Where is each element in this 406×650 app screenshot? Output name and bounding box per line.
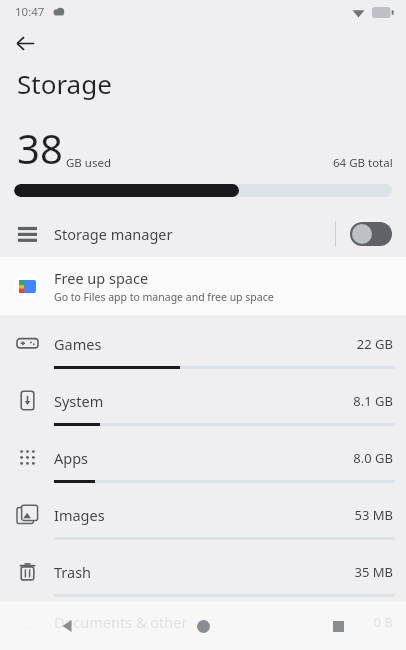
staticText: System <box>54 391 104 411</box>
staticText: Apps <box>54 448 89 468</box>
button[interactable]: Recent apps <box>271 602 406 650</box>
staticText: 38 <box>17 121 63 175</box>
staticText: 64 GB total <box>333 155 393 171</box>
staticText: 10:47 <box>15 4 45 20</box>
staticText: Free up space <box>54 268 149 288</box>
staticText: Storage manager <box>54 224 173 244</box>
button[interactable]: System <box>0 378 406 435</box>
button[interactable]: Games <box>0 321 406 378</box>
button[interactable]: Apps <box>0 435 406 492</box>
button[interactable]: Documents & other <box>0 606 406 650</box>
staticText: 22 GB <box>356 335 393 353</box>
staticText: 0 B <box>373 613 393 631</box>
staticText: Games <box>54 334 102 354</box>
button[interactable]: Trash <box>0 549 406 606</box>
staticText: 8.1 GB <box>353 392 393 410</box>
staticText: Images <box>54 505 105 525</box>
staticText: Documents & other <box>54 612 188 632</box>
staticText: GB used <box>66 155 112 171</box>
button[interactable]: Storage manager toggle <box>350 222 392 246</box>
button[interactable]: Free up space <box>0 257 406 315</box>
button[interactable]: Storage manager <box>0 211 406 257</box>
staticText: Go to Files app to manage and free up sp… <box>54 290 274 304</box>
staticText: 53 MB <box>354 506 393 524</box>
button[interactable]: Back <box>7 25 43 61</box>
button[interactable]: Home <box>136 602 271 650</box>
staticText: 35 MB <box>354 563 393 581</box>
staticText: Storage <box>17 66 112 101</box>
staticText: Trash <box>54 562 92 582</box>
button[interactable]: Images <box>0 492 406 549</box>
button[interactable]: Back <box>0 602 136 650</box>
staticText: 8.0 GB <box>353 449 393 467</box>
